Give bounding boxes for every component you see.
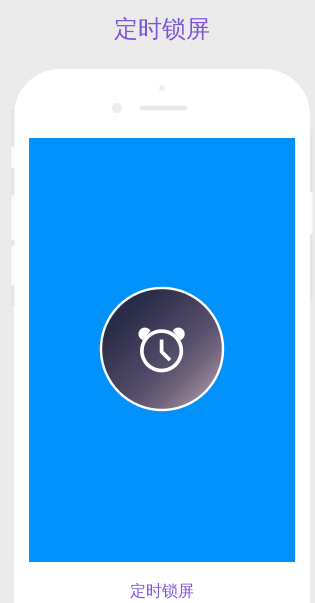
staticText: 定时锁屏 bbox=[130, 581, 194, 601]
staticText: 定时锁屏 bbox=[114, 14, 210, 44]
